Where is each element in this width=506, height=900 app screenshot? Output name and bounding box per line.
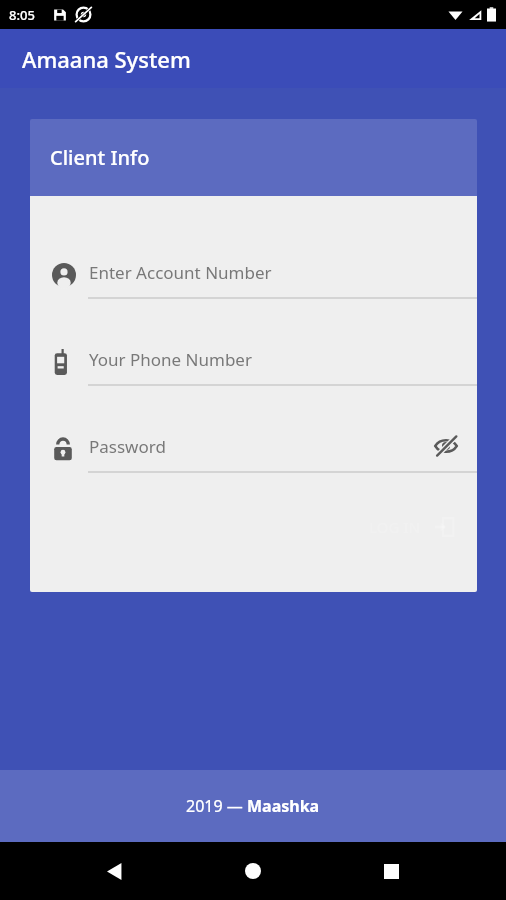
staticText: Your Phone Number: [89, 348, 252, 371]
button[interactable]: Show password: [431, 431, 461, 461]
button[interactable]: Your Phone Number: [30, 341, 477, 387]
staticText: 8:05: [9, 6, 35, 24]
staticText: Amaana System: [22, 44, 191, 74]
staticText: 2019 —: [186, 795, 247, 817]
button[interactable]: Password: [30, 428, 477, 474]
button[interactable]: Home: [230, 848, 276, 894]
staticText: Maashka: [247, 795, 320, 817]
button[interactable]: Enter Account Number: [30, 254, 477, 300]
button[interactable]: Recent apps: [368, 848, 414, 894]
staticText: Enter Account Number: [89, 261, 272, 284]
staticText: Client Info: [50, 144, 150, 171]
button[interactable]: Back: [92, 848, 138, 894]
staticText: Password: [89, 435, 166, 458]
